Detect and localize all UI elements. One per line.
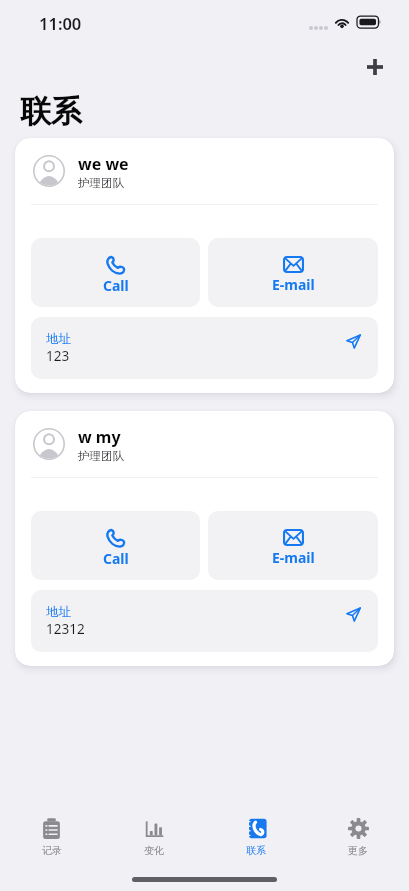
staticText: 地址	[46, 604, 71, 620]
staticText: 记录	[42, 844, 62, 857]
staticText: E-mail	[272, 275, 315, 294]
button[interactable]: E-mail	[208, 511, 378, 580]
button[interactable]: Call	[31, 238, 200, 307]
staticText: E-mail	[272, 548, 315, 567]
staticText: 联系	[20, 92, 82, 131]
button[interactable]: Call	[31, 511, 200, 580]
button[interactable]: 更多	[307, 818, 409, 857]
staticText: 变化	[144, 844, 164, 857]
staticText: 11:00	[39, 12, 82, 34]
button[interactable]: 变化	[103, 818, 205, 857]
staticText: 更多	[348, 844, 368, 857]
staticText: 123	[46, 347, 70, 365]
button[interactable]: Add contact	[353, 48, 396, 86]
button[interactable]: 记录	[0, 818, 103, 857]
button[interactable]: 地址	[31, 590, 378, 652]
staticText: 护理团队	[78, 176, 124, 190]
button[interactable]: 联系	[205, 818, 307, 857]
staticText: 护理团队	[78, 449, 124, 463]
staticText: 联系	[246, 844, 266, 857]
staticText: we we	[78, 153, 129, 175]
other: Directions	[346, 334, 361, 349]
button[interactable]: E-mail	[208, 238, 378, 307]
staticText: Call	[103, 276, 129, 295]
staticText: 12312	[46, 620, 85, 638]
button[interactable]: 地址	[31, 317, 378, 379]
other: Directions	[346, 607, 361, 622]
staticText: 地址	[46, 331, 71, 347]
staticText: Call	[103, 549, 129, 568]
staticText: w my	[78, 426, 121, 448]
